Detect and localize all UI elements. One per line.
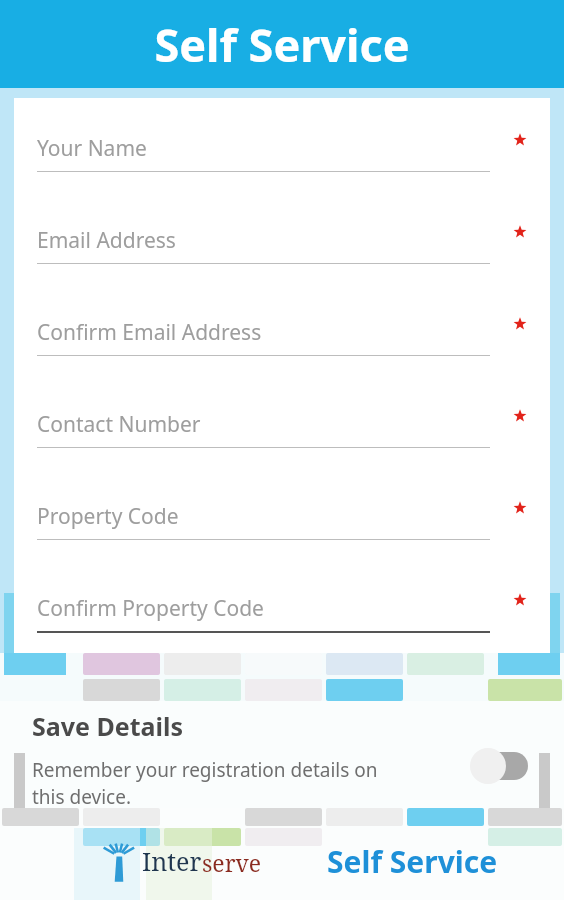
staticText: Email Address [37, 226, 176, 255]
button[interactable]: Confirm Property Code [14, 568, 550, 653]
staticText: Your Name [37, 134, 147, 163]
staticText: Contact Number [37, 410, 201, 439]
staticText: Confirm Property Code [37, 594, 264, 623]
staticText: Inter [142, 844, 202, 878]
staticText: Save Details [32, 709, 183, 743]
button[interactable]: Inter [96, 838, 262, 884]
staticText: Self Service [327, 841, 498, 882]
staticText: Self Service [154, 14, 410, 75]
staticText: Property Code [37, 502, 179, 531]
button[interactable]: Property Code [14, 476, 550, 568]
button[interactable]: Confirm Email Address [14, 292, 550, 384]
staticText: serve [202, 847, 262, 878]
staticText: Confirm Email Address [37, 318, 262, 347]
button[interactable]: Save Details [0, 709, 564, 808]
button[interactable]: Your Name [14, 108, 550, 200]
staticText: Remember your registration details on th… [32, 757, 378, 808]
button[interactable]: Contact Number [14, 384, 550, 476]
button[interactable]: Save details toggle [470, 747, 528, 785]
button[interactable]: Email Address [14, 200, 550, 292]
button[interactable]: Self Service [327, 841, 498, 882]
